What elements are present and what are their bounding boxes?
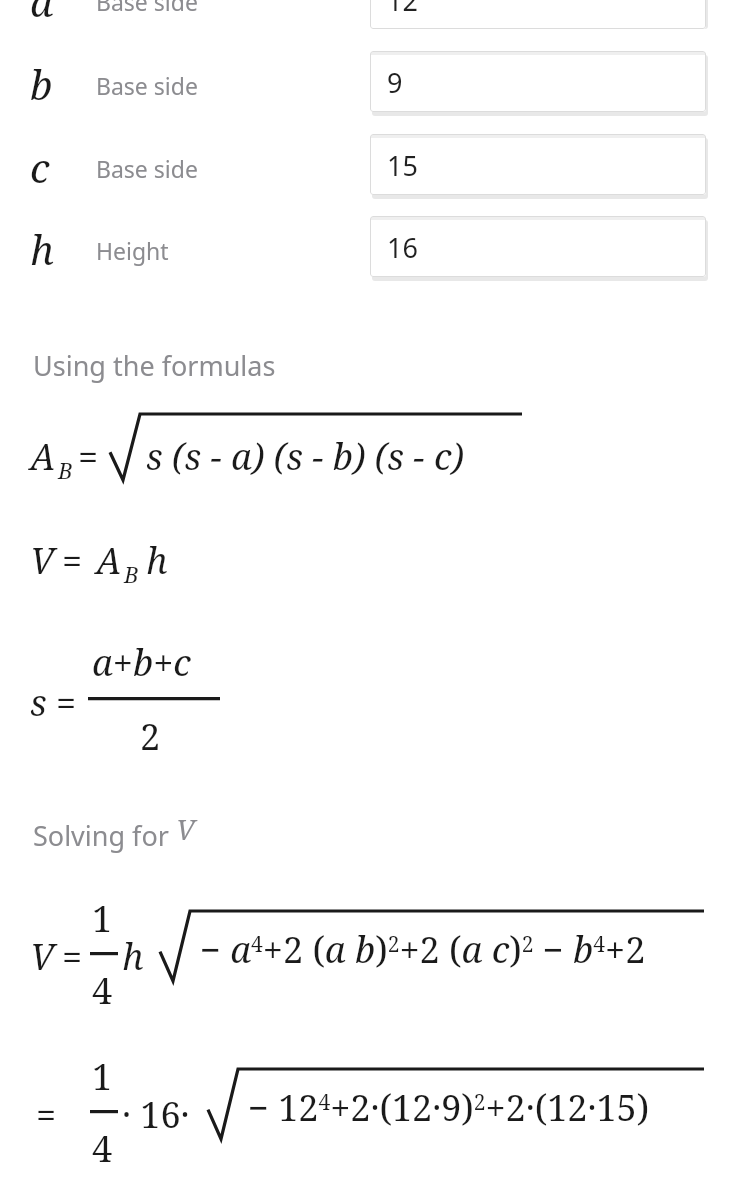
staticText: 9 — [387, 64, 403, 101]
staticText: 15 — [387, 147, 418, 184]
staticText: = — [62, 932, 83, 981]
button[interactable]: Base side — [370, 134, 706, 195]
staticText: B — [124, 559, 139, 589]
staticText: 4 — [92, 1124, 113, 1173]
staticText: 16 — [387, 229, 418, 266]
staticText: = — [62, 536, 83, 585]
staticText: 2 — [140, 712, 161, 761]
staticText: c — [30, 140, 50, 194]
staticText: a — [30, 0, 54, 28]
staticText: V — [30, 932, 55, 981]
button[interactable]: Base side — [370, 51, 706, 112]
staticText: 1 — [92, 894, 113, 943]
staticText: Using the formulas — [33, 347, 276, 384]
staticText: 12 — [387, 0, 418, 19]
staticText: 1 — [92, 1052, 113, 1101]
button[interactable]: Base side a — [370, 0, 706, 29]
staticText: s — [30, 678, 47, 727]
staticText: Base side — [96, 0, 198, 17]
staticText: a+b+c — [92, 638, 191, 687]
staticText: = — [56, 678, 77, 727]
staticText: = — [78, 432, 99, 481]
staticText: Height — [96, 235, 169, 266]
staticText: B — [58, 455, 73, 485]
staticText: A — [96, 536, 122, 585]
staticText: Base side — [96, 153, 198, 184]
staticText: h — [146, 536, 168, 585]
staticText: · 16· — [122, 1090, 190, 1139]
staticText: A — [30, 432, 56, 481]
staticText: h — [30, 222, 54, 276]
staticText: − a4+2 (a b)2+2 (a c)2 − b4+2 — [200, 925, 646, 974]
staticText: s (s − a) (s − b) (s − c) — [146, 432, 464, 481]
staticText: V — [30, 536, 55, 585]
staticText: h — [122, 932, 144, 981]
staticText: b — [30, 57, 53, 111]
staticText: = — [36, 1090, 57, 1139]
staticText: − 124+2·(12·9)2+2·(12·15) — [248, 1083, 650, 1132]
staticText: V — [176, 810, 195, 848]
staticText: Solving for — [33, 817, 169, 854]
staticText: Base side — [96, 70, 198, 101]
button[interactable]: Height — [370, 216, 706, 277]
staticText: 4 — [92, 966, 113, 1015]
